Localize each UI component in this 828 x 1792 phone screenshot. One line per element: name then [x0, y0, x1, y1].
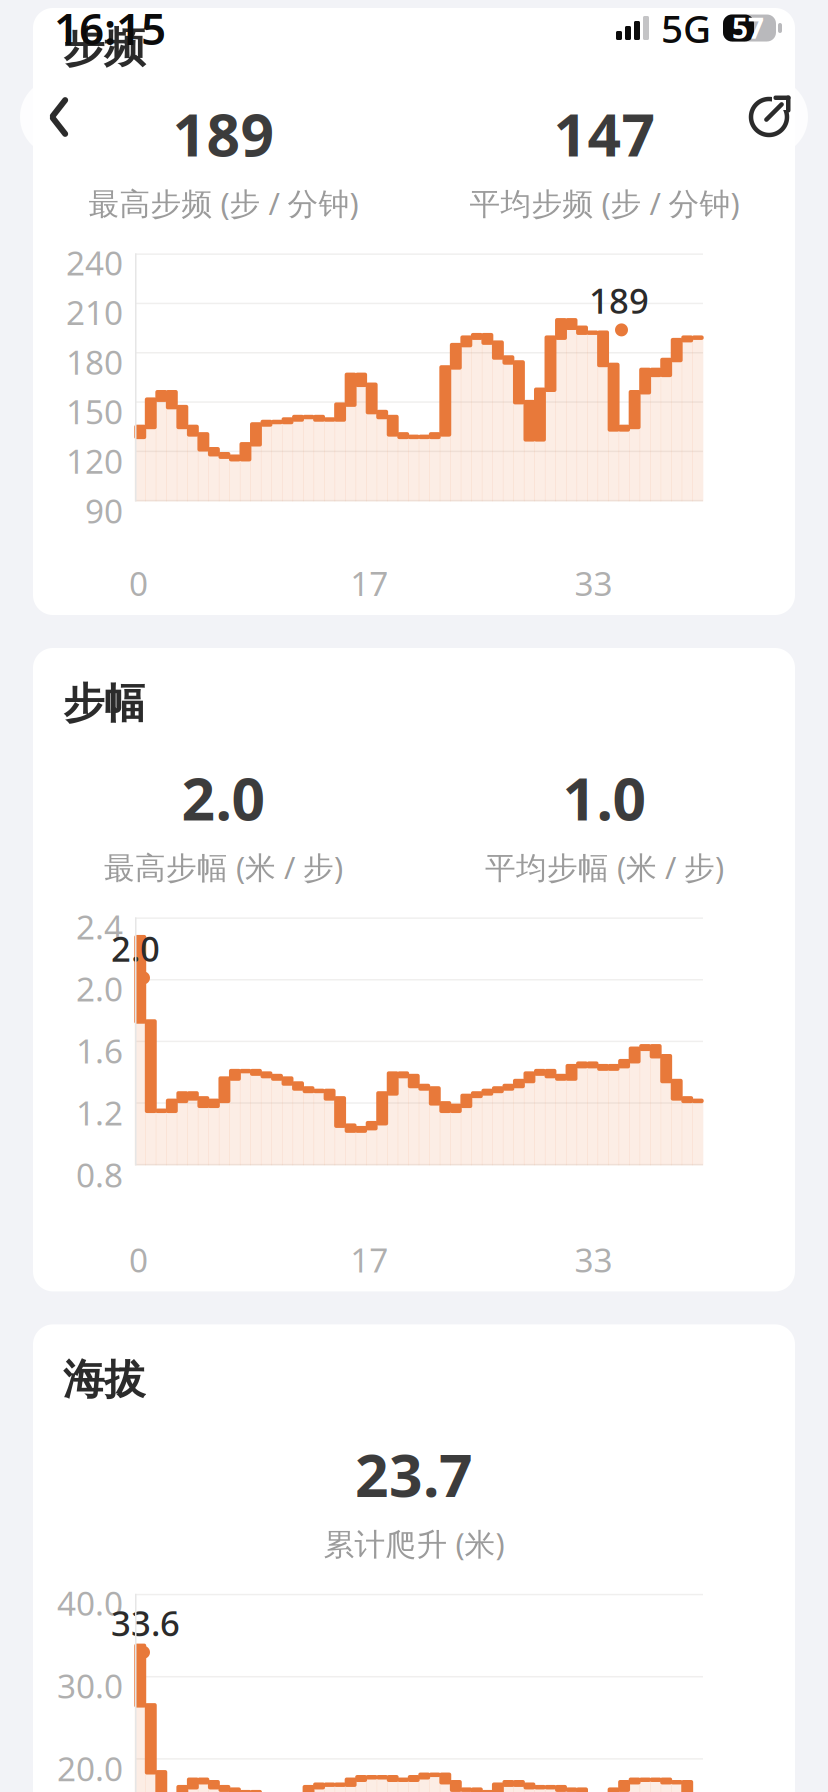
staticText: 150 — [66, 389, 123, 433]
staticText: 147 — [553, 95, 655, 173]
staticText: 40.0 — [57, 1581, 123, 1625]
staticText: 累计爬升 (米) — [323, 1523, 504, 1564]
staticText: 16:15 — [54, 0, 166, 57]
staticText: 1.0 — [562, 759, 646, 837]
staticText: 120 — [66, 439, 123, 483]
staticText: 0 — [129, 561, 148, 605]
staticText: 1.6 — [76, 1028, 123, 1073]
staticText: 17 — [350, 1237, 388, 1282]
staticText: 23.7 — [355, 1435, 473, 1513]
staticText: 平均步频 (步 / 分钟) — [469, 183, 739, 223]
staticText: 90 — [85, 488, 123, 533]
staticText: 189 — [172, 95, 274, 173]
staticText: 2.4 — [76, 904, 123, 949]
staticText: 33 — [575, 1237, 613, 1282]
staticText: 步幅 — [63, 678, 145, 729]
button[interactable]: Share — [730, 78, 808, 156]
staticText: 189 — [589, 277, 649, 323]
staticText: 最高步幅 (米 / 步) — [104, 847, 343, 887]
staticText: 57 — [732, 9, 764, 47]
staticText: 0 — [129, 1237, 148, 1282]
staticText: 1.2 — [76, 1090, 123, 1135]
staticText: 33.6 — [111, 1600, 180, 1646]
staticText: 平均步幅 (米 / 步) — [485, 847, 724, 887]
staticText: 17 — [350, 561, 388, 605]
staticText: 30.0 — [57, 1663, 123, 1708]
staticText: 5G — [661, 2, 711, 54]
staticText: 210 — [66, 290, 123, 334]
button[interactable]: Back — [20, 78, 98, 156]
staticText: 20.0 — [57, 1746, 123, 1790]
staticText: 0.8 — [76, 1152, 123, 1197]
staticText: 2.0 — [111, 925, 160, 971]
staticText: 180 — [66, 340, 123, 384]
staticText: 33 — [575, 561, 613, 605]
staticText: 2.0 — [76, 966, 123, 1011]
staticText: 240 — [66, 240, 123, 285]
staticText: 步频 — [63, 22, 145, 73]
staticText: 最高步频 (步 / 分钟) — [88, 183, 358, 223]
staticText: 海拔 — [63, 1354, 145, 1405]
staticText: 2.0 — [181, 759, 265, 837]
